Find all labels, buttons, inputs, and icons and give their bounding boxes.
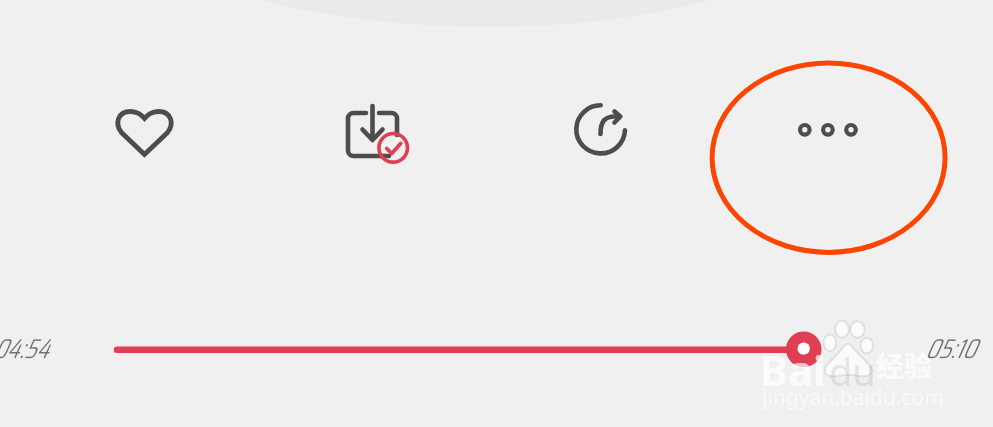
staticText: 05:10 [925,327,976,369]
button[interactable]: Share [555,83,651,179]
staticText: 04:54 [0,327,49,369]
staticText: du [829,345,876,397]
staticText: jingyan.baidu.com [762,383,944,412]
button[interactable]: Seek bar [96,318,822,380]
button[interactable]: Downloaded [326,84,422,180]
button[interactable]: Favourite [64,81,160,177]
staticText: 经验 [876,345,933,386]
staticText: Bai [760,341,826,398]
button[interactable]: More options [757,82,853,178]
